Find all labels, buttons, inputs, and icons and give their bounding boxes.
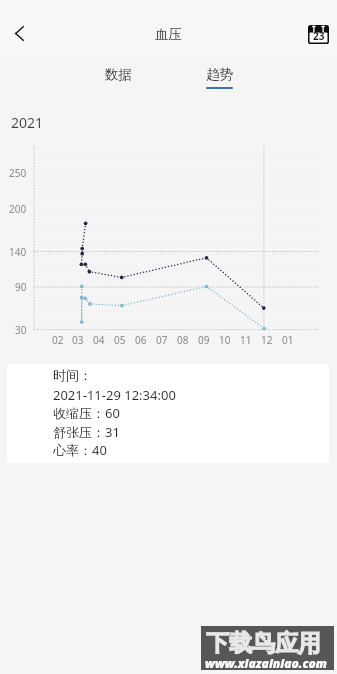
staticText: 11 [240, 333, 252, 347]
staticText: 心率：40 [53, 441, 107, 459]
staticText: 09 [198, 333, 210, 347]
staticText: 数据 [105, 66, 132, 83]
staticText: 收缩压：60 [53, 404, 120, 422]
staticText: 01 [282, 333, 294, 347]
staticText: 2021 [11, 113, 44, 132]
staticText: 2021-11-29 12:34:00 [53, 386, 176, 404]
staticText: 下载鸟应用 [206, 629, 321, 658]
staticText: 05 [114, 333, 126, 347]
staticText: 03 [72, 333, 84, 347]
staticText: 10 [219, 333, 231, 347]
staticText: 90 [15, 280, 27, 294]
staticText: 200 [9, 202, 27, 216]
staticText: 08 [177, 333, 189, 347]
button[interactable]: 时间： [7, 364, 329, 463]
staticText: 250 [9, 166, 27, 180]
button[interactable]: Back [3, 17, 35, 49]
button[interactable]: 数据 [92, 56, 144, 86]
staticText: 时间： [53, 367, 92, 383]
staticText: 02 [52, 333, 64, 347]
staticText: www.xiazainiao.com [205, 655, 327, 671]
staticText: 23 [313, 29, 325, 43]
staticText: 趋势 [206, 66, 233, 83]
staticText: 140 [9, 245, 27, 259]
staticText: 06 [135, 333, 147, 347]
staticText: 血压 [155, 26, 182, 43]
staticText: 30 [15, 323, 27, 337]
staticText: 12 [261, 333, 273, 347]
staticText: 07 [156, 333, 168, 347]
staticText: 舒张压：31 [53, 423, 120, 441]
button[interactable]: Calendar [300, 18, 334, 52]
staticText: 04 [93, 333, 105, 347]
button[interactable]: 趋势 [193, 56, 245, 94]
